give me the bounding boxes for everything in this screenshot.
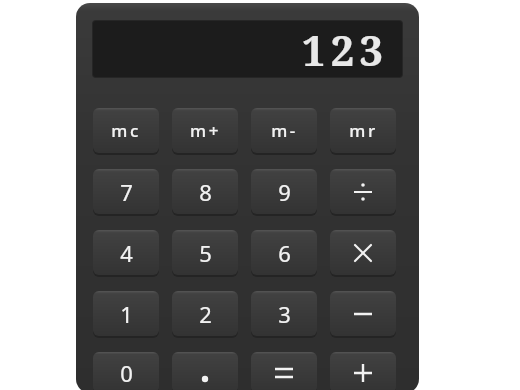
- button[interactable]: 0: [93, 352, 159, 390]
- button[interactable]: Decimal point: [172, 352, 238, 390]
- button[interactable]: 8: [172, 169, 238, 214]
- button[interactable]: 9: [251, 169, 317, 214]
- staticText: m+: [190, 119, 221, 142]
- staticText: 1: [120, 299, 133, 329]
- staticText: m-: [271, 119, 298, 142]
- button[interactable]: Divide: [330, 169, 396, 214]
- button[interactable]: 2: [172, 291, 238, 336]
- button[interactable]: Multiply: [330, 230, 396, 275]
- button[interactable]: Equals: [251, 352, 317, 390]
- staticText: 7: [120, 177, 133, 207]
- staticText: 0: [120, 358, 133, 388]
- button[interactable]: mc: [93, 108, 159, 153]
- button[interactable]: 1: [93, 291, 159, 336]
- staticText: 123: [301, 21, 388, 74]
- button[interactable]: 3: [251, 291, 317, 336]
- button[interactable]: Subtract: [330, 291, 396, 336]
- staticText: 8: [199, 177, 212, 207]
- staticText: mr: [349, 119, 378, 142]
- button[interactable]: 6: [251, 230, 317, 275]
- button[interactable]: m-: [251, 108, 317, 153]
- button[interactable]: Add: [330, 352, 396, 390]
- staticText: 4: [120, 238, 133, 268]
- staticText: 9: [278, 177, 291, 207]
- button[interactable]: mr: [330, 108, 396, 153]
- button[interactable]: 5: [172, 230, 238, 275]
- staticText: 2: [199, 299, 212, 329]
- staticText: 6: [278, 238, 291, 268]
- staticText: mc: [111, 119, 141, 142]
- button[interactable]: m+: [172, 108, 238, 153]
- staticText: 3: [278, 299, 291, 329]
- button[interactable]: 4: [93, 230, 159, 275]
- staticText: 5: [199, 238, 212, 268]
- button[interactable]: 7: [93, 169, 159, 214]
